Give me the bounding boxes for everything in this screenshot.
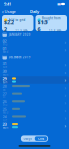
staticText: › xyxy=(64,46,66,53)
staticText: › xyxy=(64,114,66,122)
button[interactable]: 31 xyxy=(0,61,69,69)
staticText: 9:41 xyxy=(4,1,11,7)
staticText: Mon xyxy=(2,73,8,76)
staticText: 24 xyxy=(2,114,6,119)
staticText: $2.22 xyxy=(4,19,14,33)
staticText: 21.9 kWh xyxy=(15,29,28,33)
staticText: › xyxy=(64,39,66,46)
staticText: Usage xyxy=(23,137,32,140)
button[interactable]: 30 xyxy=(0,69,69,76)
button[interactable]: Sold to grid xyxy=(2,15,33,31)
staticText: › xyxy=(64,76,66,84)
staticText: 10.8 kWh xyxy=(49,29,62,33)
staticText: › xyxy=(64,122,66,129)
staticText: Usage xyxy=(4,9,15,14)
staticText: Thu xyxy=(2,43,7,46)
staticText: Sat xyxy=(2,88,5,91)
staticText: › xyxy=(64,107,66,114)
button[interactable]: 24 xyxy=(0,114,69,122)
staticText: › xyxy=(64,92,66,99)
staticText: DECEMBER 2019 xyxy=(9,55,31,59)
staticText: Wed xyxy=(2,50,8,54)
staticText: 23 xyxy=(2,122,6,127)
staticText: Bought from grid xyxy=(42,16,61,24)
button[interactable]: 01 xyxy=(0,46,69,54)
staticText: Sold to grid xyxy=(8,18,25,22)
staticText: Fri xyxy=(2,96,5,99)
staticText: 02 xyxy=(2,38,6,43)
button[interactable]: Usage xyxy=(22,136,34,141)
button[interactable]: Cost xyxy=(35,136,47,141)
staticText: 31 xyxy=(2,61,6,66)
staticText: › xyxy=(64,69,66,76)
staticText: 25 xyxy=(2,106,6,112)
staticText: › xyxy=(64,99,66,106)
button[interactable]: 26 xyxy=(0,99,69,107)
button[interactable]: 25 xyxy=(0,107,69,114)
staticText: Tue xyxy=(2,65,7,69)
staticText: Sun xyxy=(2,80,7,84)
staticText: $1.36 xyxy=(37,19,47,33)
staticText: JANUARY 2020 xyxy=(9,33,31,36)
staticText: › xyxy=(64,61,66,68)
button[interactable]: ‹ xyxy=(0,8,16,15)
button[interactable]: 23 xyxy=(0,122,69,129)
staticText: ‹ xyxy=(2,8,4,15)
button[interactable]: Bought from grid xyxy=(35,15,67,31)
button[interactable]: 29 xyxy=(0,76,69,84)
button[interactable]: 28 xyxy=(0,84,69,91)
staticText: › xyxy=(64,84,66,91)
staticText: Thu xyxy=(2,103,7,107)
staticText: Tue xyxy=(2,118,7,122)
staticText: 28 xyxy=(2,84,6,89)
staticText: 30 xyxy=(2,68,6,74)
staticText: Mon xyxy=(2,126,8,129)
staticText: 01 xyxy=(2,46,6,51)
button[interactable]: 02 xyxy=(0,38,69,46)
staticText: 26 xyxy=(2,99,6,104)
staticText: Daily xyxy=(30,9,39,14)
staticText: 27 xyxy=(2,91,6,96)
staticText: ▮▮▮ xyxy=(57,2,60,5)
staticText: Cost xyxy=(38,137,44,140)
staticText: Wed xyxy=(2,111,8,114)
staticText: 29 xyxy=(2,76,6,81)
button[interactable]: 27 xyxy=(0,91,69,99)
